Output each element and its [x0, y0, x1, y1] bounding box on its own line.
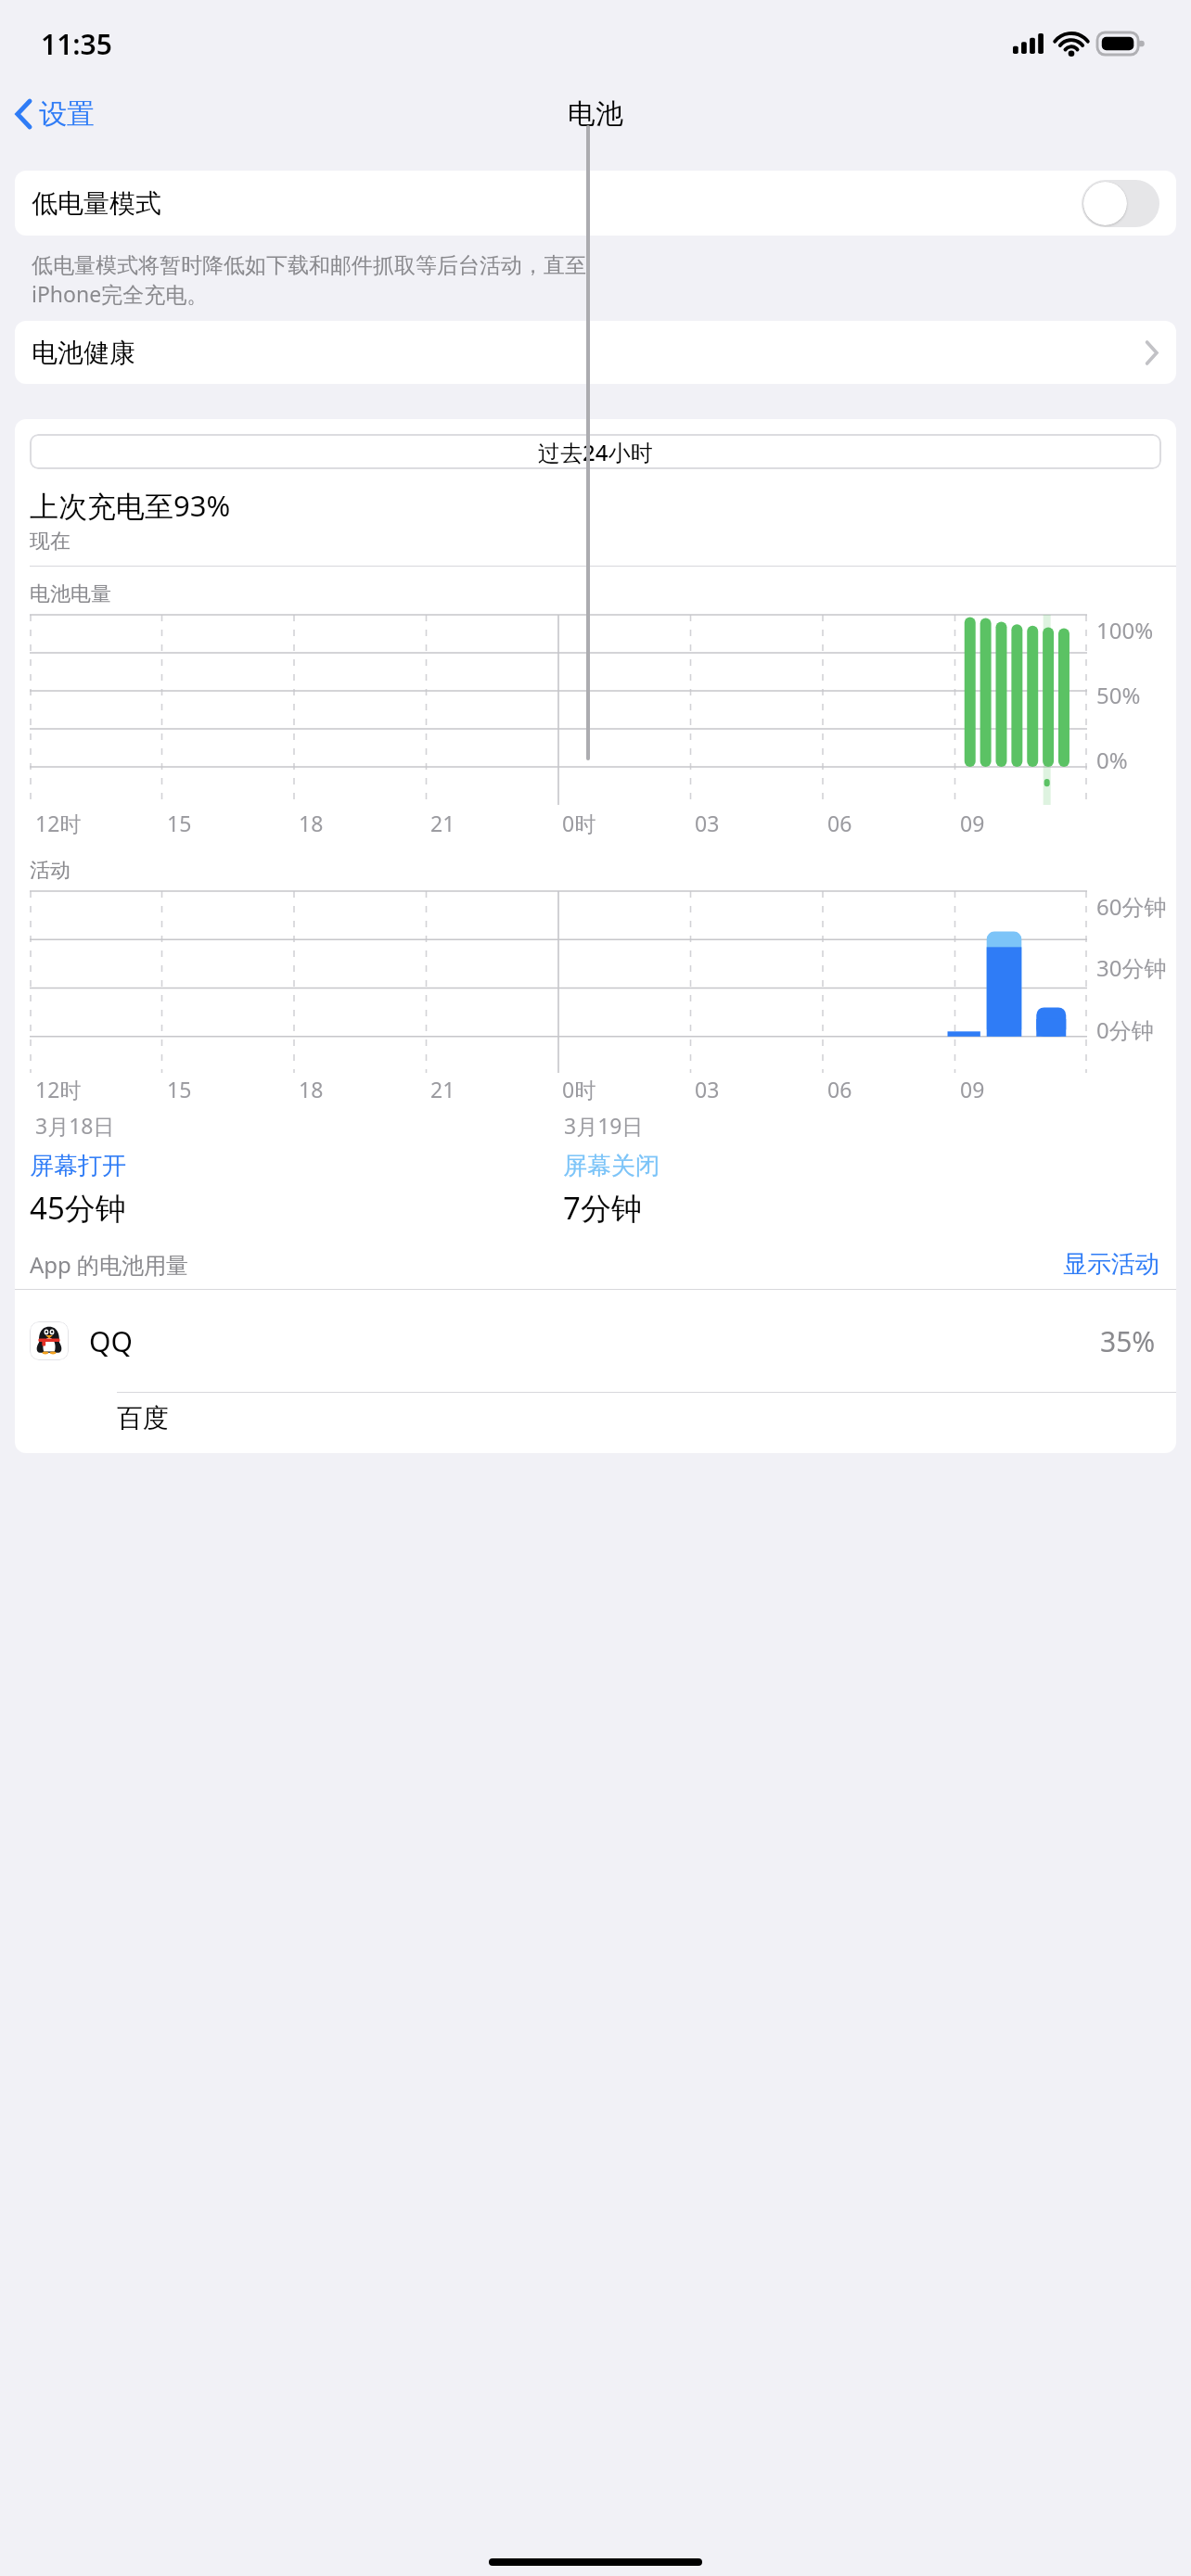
staticText: 50%	[1096, 680, 1141, 710]
staticText: 100%	[1096, 615, 1154, 645]
staticText: 电池电量	[30, 581, 111, 607]
staticText: 3月18日	[35, 1111, 115, 1140]
staticText: 09	[960, 1075, 985, 1103]
staticText: 屏幕关闭	[563, 1151, 660, 1181]
staticText: 15	[167, 1075, 192, 1103]
staticText: 低电量模式将暂时降低如下载和邮件抓取等后台活动，直至	[32, 252, 586, 279]
staticText: 09	[960, 809, 985, 837]
staticText: 屏幕打开	[30, 1151, 126, 1181]
staticText: 12时	[35, 809, 82, 837]
staticText: 0%	[1096, 745, 1128, 775]
button[interactable]: 屏幕打开	[30, 1151, 563, 1229]
button[interactable]: 电池健康	[15, 321, 1176, 384]
staticText: 现在	[30, 529, 70, 555]
staticText: 设置	[39, 96, 95, 132]
staticText: 35%	[1100, 1322, 1156, 1360]
staticText: 电池	[568, 96, 623, 132]
staticText: 3月19日	[564, 1111, 644, 1140]
staticText: 45分钟	[30, 1187, 126, 1229]
staticText: 06	[827, 1075, 852, 1103]
staticText: 12时	[35, 1075, 82, 1103]
staticText: 过去24小时	[538, 437, 653, 467]
staticText: 显示活动	[1063, 1249, 1159, 1280]
staticText: 21	[430, 1075, 455, 1103]
button[interactable]: 低电量模式	[15, 171, 1176, 236]
staticText: App 的电池用量	[30, 1249, 189, 1280]
button[interactable]: 低电量模式开关	[1082, 180, 1159, 227]
staticText: 7分钟	[563, 1187, 642, 1229]
button[interactable]: 设置	[0, 91, 106, 137]
staticText: 电池健康	[32, 337, 135, 369]
staticText: 60分钟	[1096, 891, 1167, 922]
staticText: 18	[299, 809, 324, 837]
staticText: 03	[695, 809, 720, 837]
staticText: 15	[167, 809, 192, 837]
button[interactable]: QQ	[15, 1290, 1176, 1392]
staticText: 11:35	[41, 25, 112, 63]
button[interactable]: 屏幕关闭	[563, 1151, 1176, 1229]
button[interactable]: 显示活动	[1063, 1249, 1159, 1280]
staticText: 活动	[30, 858, 70, 884]
staticText: 0分钟	[1096, 1014, 1154, 1045]
staticText: 18	[299, 1075, 324, 1103]
staticText: 21	[430, 809, 455, 837]
staticText: QQ	[89, 1322, 133, 1360]
staticText: iPhone完全充电。	[32, 279, 209, 308]
staticText: 06	[827, 809, 852, 837]
staticText: 低电量模式	[32, 187, 161, 220]
staticText: 0时	[562, 809, 596, 837]
staticText: 百度	[117, 1402, 169, 1435]
staticText: 03	[695, 1075, 720, 1103]
staticText: 上次充电至93%	[30, 486, 231, 525]
staticText: 30分钟	[1096, 952, 1167, 983]
button[interactable]: 过去24小时	[30, 434, 1161, 469]
staticText: 0时	[562, 1075, 596, 1103]
